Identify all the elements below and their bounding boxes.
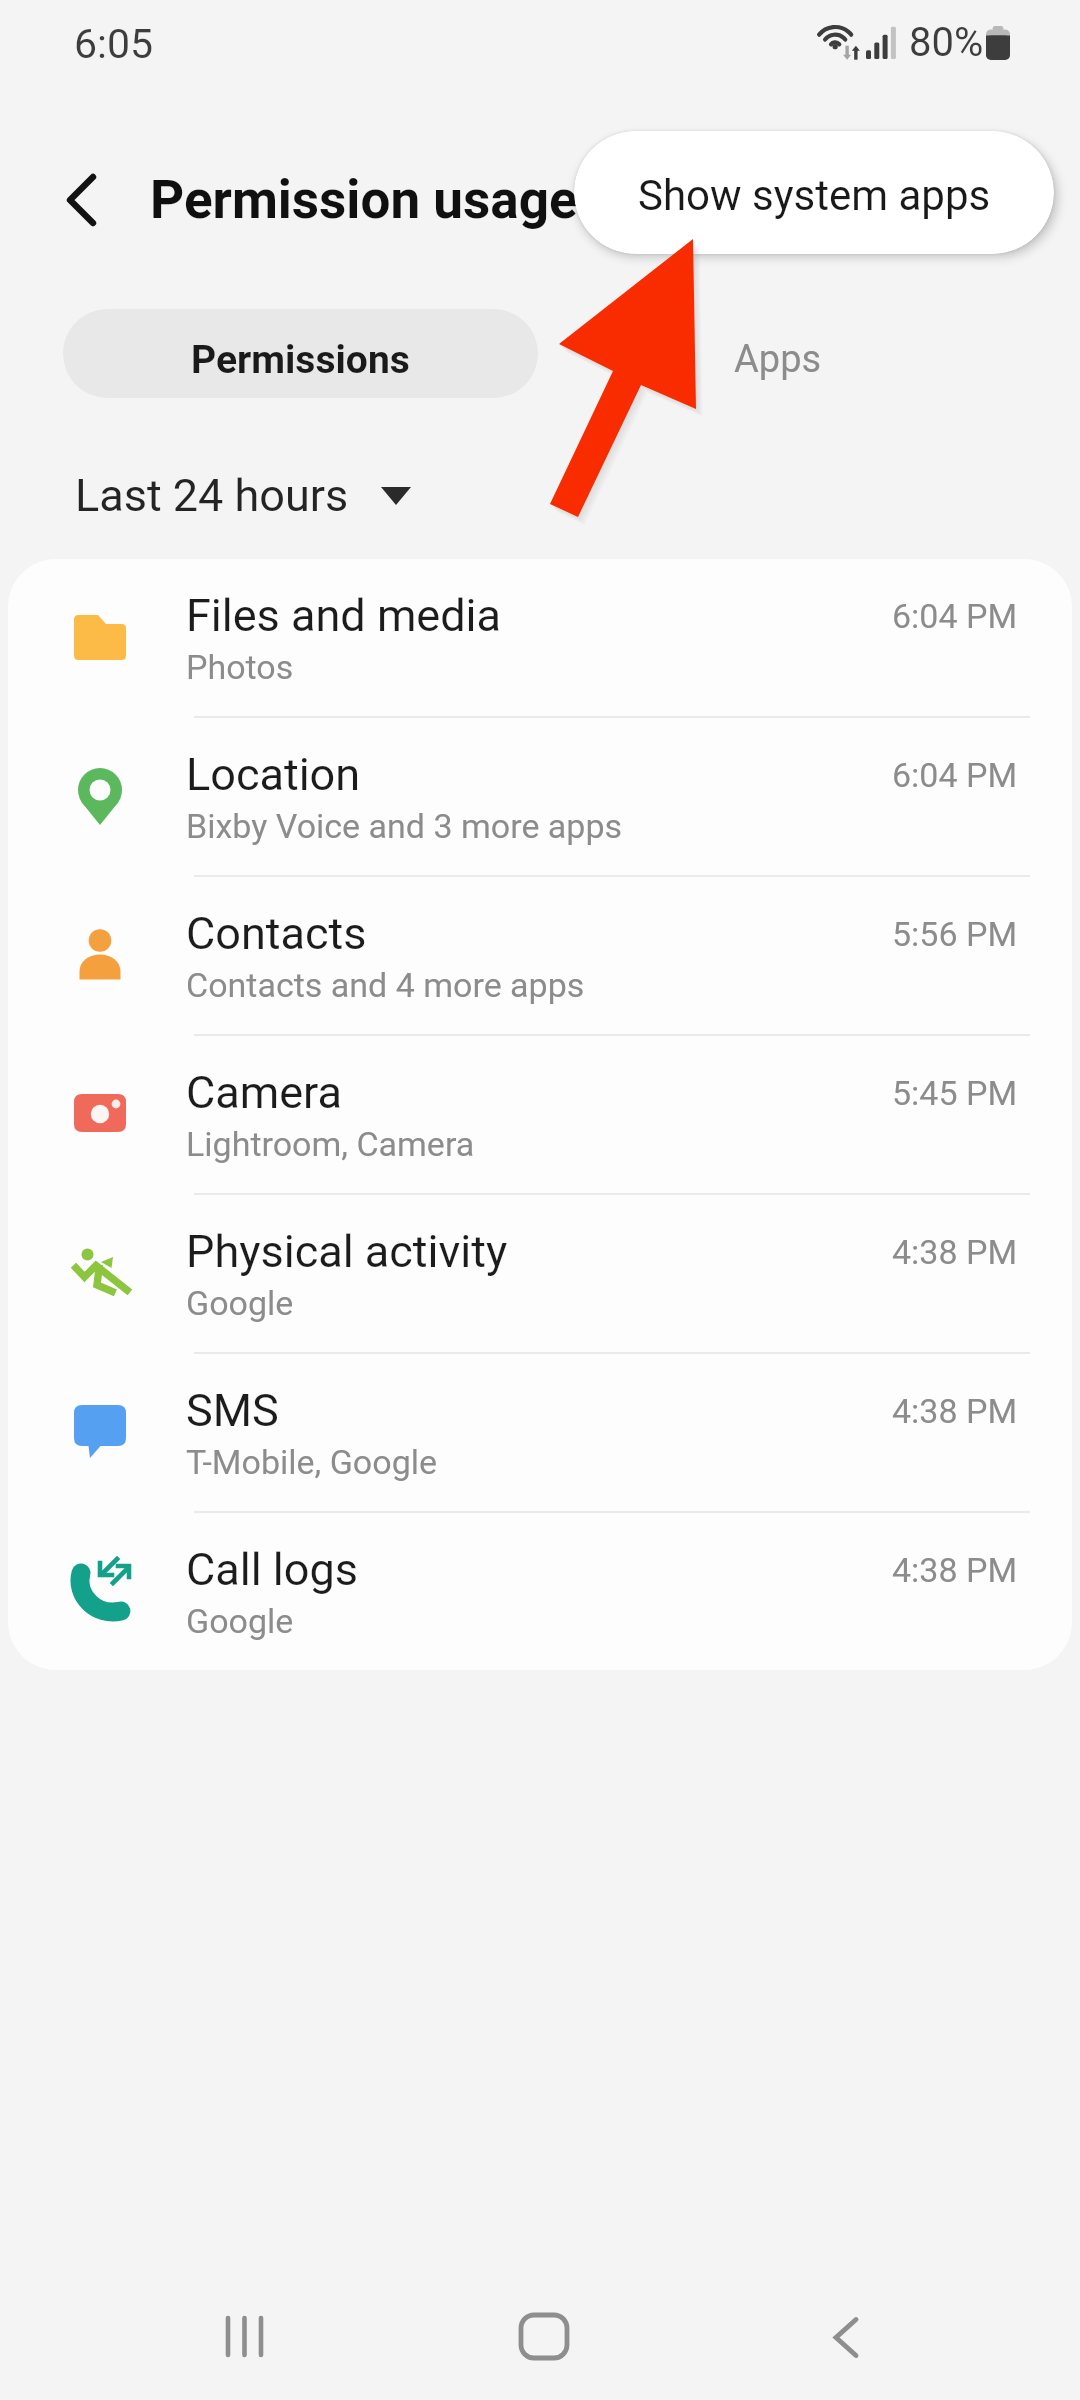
staticText: Apps xyxy=(734,337,822,382)
staticText: 6:04 PM xyxy=(892,596,1018,636)
button[interactable]: Last 24 hours xyxy=(67,461,419,530)
staticText: Photos xyxy=(186,647,294,687)
staticText: 5:45 PM xyxy=(892,1073,1018,1113)
staticText: Files and media xyxy=(186,589,501,642)
staticText: Lightroom, Camera xyxy=(186,1124,475,1164)
staticText: Bixby Voice and 3 more apps xyxy=(186,806,623,846)
staticText: 4:38 PM xyxy=(892,1391,1018,1431)
staticText: Google xyxy=(186,1283,294,1323)
button[interactable]: Files and media xyxy=(8,559,1072,718)
staticText: Physical activity xyxy=(186,1225,508,1278)
button[interactable]: Home xyxy=(489,2281,600,2392)
button[interactable]: Back xyxy=(791,2281,902,2392)
staticText: 4:38 PM xyxy=(892,1232,1018,1272)
button[interactable]: Navigate up xyxy=(43,162,119,238)
staticText: Last 24 hours xyxy=(75,469,349,522)
staticText: Show system apps xyxy=(638,171,991,220)
button[interactable]: Apps xyxy=(540,309,1015,398)
button[interactable]: Call logs xyxy=(8,1513,1072,1670)
staticText: 80% xyxy=(909,19,984,66)
staticText: T-Mobile, Google xyxy=(186,1442,438,1482)
staticText: 6:04 PM xyxy=(892,755,1018,795)
staticText: Permission usage xyxy=(150,169,578,231)
button[interactable]: Physical activity xyxy=(8,1195,1072,1354)
staticText: 4:38 PM xyxy=(892,1550,1018,1590)
staticText: Contacts xyxy=(186,907,367,960)
staticText: Contacts and 4 more apps xyxy=(186,965,585,1005)
staticText: Call logs xyxy=(186,1543,358,1596)
staticText: SMS xyxy=(186,1384,279,1437)
staticText: 6:05 xyxy=(74,20,154,68)
staticText: Camera xyxy=(186,1066,342,1119)
button[interactable]: Show system apps xyxy=(574,131,1054,254)
button[interactable]: SMS xyxy=(8,1354,1072,1513)
staticText: Location xyxy=(186,748,361,801)
button[interactable]: Contacts xyxy=(8,877,1072,1036)
button[interactable]: Camera xyxy=(8,1036,1072,1195)
staticText: 5:56 PM xyxy=(892,914,1018,954)
button[interactable]: Recent apps xyxy=(189,2281,300,2392)
staticText: Google xyxy=(186,1601,294,1641)
staticText: Permissions xyxy=(191,337,410,383)
button[interactable]: Permissions xyxy=(63,309,538,398)
button[interactable]: Location xyxy=(8,718,1072,877)
